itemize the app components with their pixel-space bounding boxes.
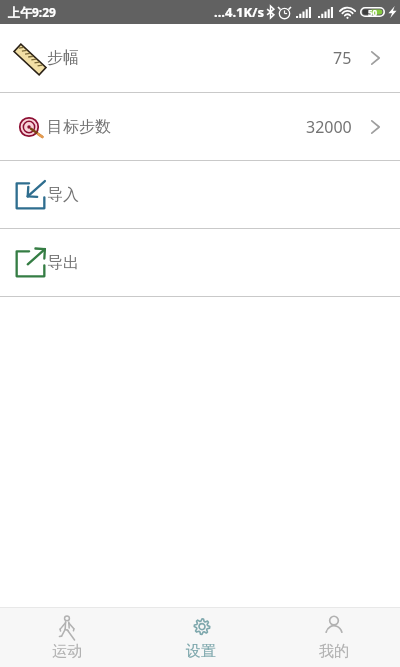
staticText: 步幅	[47, 48, 79, 68]
button[interactable]: 我的	[267, 608, 400, 667]
button[interactable]: 目标步数	[0, 93, 400, 160]
staticText: 我的	[319, 642, 349, 661]
staticText: 上午9:29	[8, 4, 56, 20]
staticText: 75	[333, 47, 352, 69]
button[interactable]: 导出	[0, 229, 400, 296]
button[interactable]: 导入	[0, 161, 400, 228]
staticText: 32000	[306, 116, 352, 138]
staticText: 目标步数	[47, 117, 111, 137]
staticText: 导出	[47, 253, 79, 273]
staticText: 设置	[186, 642, 216, 661]
button[interactable]: 设置	[134, 608, 267, 667]
button[interactable]: 步幅	[0, 24, 400, 92]
staticText: 运动	[52, 642, 82, 661]
button[interactable]: 运动	[0, 608, 134, 667]
staticText: 导入	[47, 185, 79, 205]
staticText: 50	[368, 7, 378, 17]
staticText: ...4.1K/s	[214, 3, 265, 21]
